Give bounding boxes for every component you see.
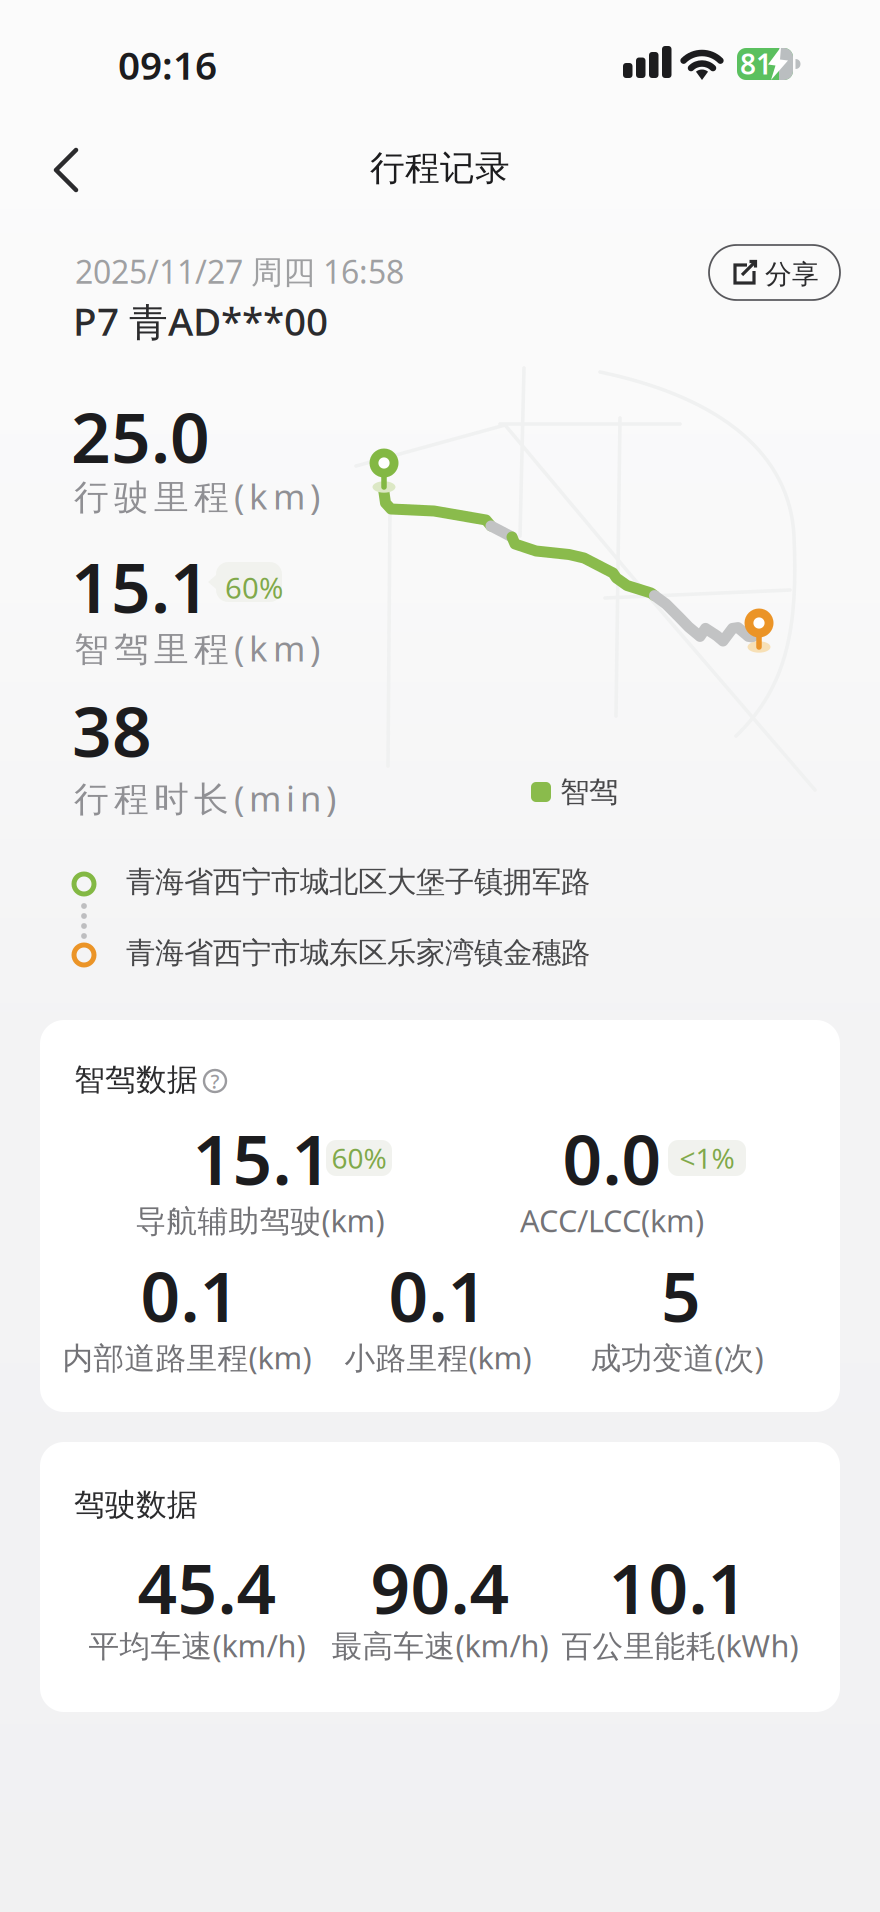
staticText: 0.0 bbox=[562, 1112, 661, 1204]
staticText: 驾驶数据 bbox=[74, 1486, 198, 1524]
staticText: 智驾数据 bbox=[74, 1061, 198, 1099]
staticText: 15.1 bbox=[192, 1112, 331, 1204]
staticText: <1% bbox=[679, 1139, 734, 1177]
staticText: 分享 bbox=[765, 258, 819, 291]
staticText: 百公里能耗(kWh) bbox=[561, 1625, 798, 1666]
staticText: 0.1 bbox=[140, 1249, 239, 1341]
staticText: 45.4 bbox=[137, 1541, 276, 1633]
staticText: 81 bbox=[740, 45, 772, 82]
staticText: 智驾 bbox=[560, 774, 618, 810]
staticText: 小路里程(km) bbox=[344, 1337, 531, 1378]
button[interactable]: 分享 bbox=[709, 245, 840, 300]
staticText: 成功变道(次) bbox=[590, 1337, 763, 1378]
staticText: 行程时长(min) bbox=[74, 775, 336, 821]
staticText: 青海省西宁市城东区乐家湾镇金穗路 bbox=[126, 935, 590, 971]
staticText: ? bbox=[210, 1068, 219, 1094]
staticText: 0.1 bbox=[388, 1249, 487, 1341]
staticText: 行程记录 bbox=[370, 147, 510, 190]
staticText: 5 bbox=[661, 1249, 701, 1341]
staticText: 平均车速(km/h) bbox=[88, 1625, 305, 1666]
staticText: ACC/LCC(km) bbox=[520, 1200, 704, 1241]
staticText: 25.0 bbox=[71, 390, 210, 482]
staticText: 2025/11/27 周四 16:58 bbox=[75, 250, 404, 292]
staticText: 15.1 bbox=[71, 540, 210, 632]
staticText: 38 bbox=[72, 684, 152, 776]
staticText: 90.4 bbox=[370, 1541, 509, 1633]
staticText: 内部道路里程(km) bbox=[62, 1337, 311, 1378]
staticText: 60% bbox=[331, 1139, 386, 1177]
staticText: 导航辅助驾驶(km) bbox=[135, 1200, 384, 1241]
staticText: P7 青AD***00 bbox=[73, 295, 328, 346]
staticText: 青海省西宁市城北区大堡子镇拥军路 bbox=[126, 864, 590, 900]
staticText: 60% bbox=[225, 568, 283, 607]
staticText: 最高车速(km/h) bbox=[331, 1625, 548, 1666]
staticText: 09:16 bbox=[118, 39, 217, 90]
staticText: 10.1 bbox=[608, 1541, 747, 1633]
staticText: 行驶里程(km) bbox=[74, 473, 320, 519]
button[interactable]: Back bbox=[46, 144, 86, 196]
staticText: 智驾里程(km) bbox=[74, 625, 320, 671]
button[interactable]: 智驾数据帮助 bbox=[204, 1070, 226, 1092]
